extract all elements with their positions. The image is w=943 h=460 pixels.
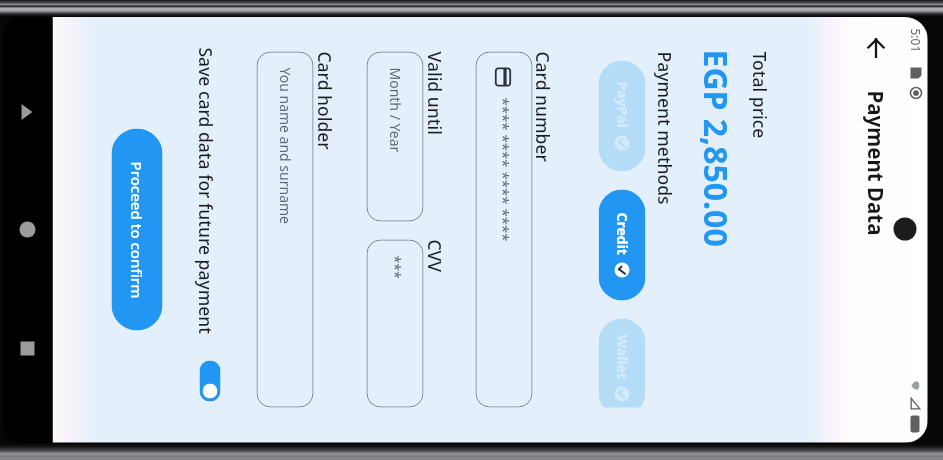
staticText: Payment methods — [652, 51, 676, 205]
button[interactable]: Save card data for future payment — [199, 360, 220, 401]
button[interactable]: Month / Year — [366, 51, 423, 221]
staticText: Save card data for future payment — [193, 47, 217, 334]
staticText: **** **** **** **** — [493, 97, 513, 241]
staticText: Card number — [530, 51, 554, 162]
button[interactable]: Back — [856, 27, 896, 67]
staticText: Proceed to confirm — [126, 161, 146, 298]
staticText: Card holder — [312, 51, 336, 150]
staticText: *** — [385, 255, 404, 279]
button[interactable]: Recents — [3, 324, 51, 372]
button[interactable]: Back — [3, 87, 51, 135]
staticText: PayPal — [612, 81, 631, 128]
button[interactable]: PayPal — [598, 60, 645, 171]
staticText: Wallet — [612, 334, 631, 379]
button[interactable]: Wallet — [598, 318, 645, 407]
staticText: EGP 2,850.00 — [693, 49, 737, 247]
staticText: You name and surname — [275, 67, 294, 224]
button[interactable]: Credit — [598, 189, 645, 300]
button[interactable]: Proceed to confirm — [111, 128, 162, 330]
staticText: Payment Data — [861, 90, 889, 235]
staticText: 5:01 — [907, 28, 923, 52]
staticText: CVV — [422, 239, 446, 272]
staticText: Month / Year — [385, 67, 404, 152]
staticText: Total price — [747, 51, 771, 138]
staticText: Credit — [612, 212, 631, 255]
button[interactable]: **** **** **** **** — [475, 51, 532, 407]
button[interactable]: You name and surname — [256, 51, 313, 407]
staticText: Valid until — [422, 51, 446, 135]
button[interactable]: Home — [3, 205, 51, 253]
button[interactable]: *** — [366, 239, 423, 407]
